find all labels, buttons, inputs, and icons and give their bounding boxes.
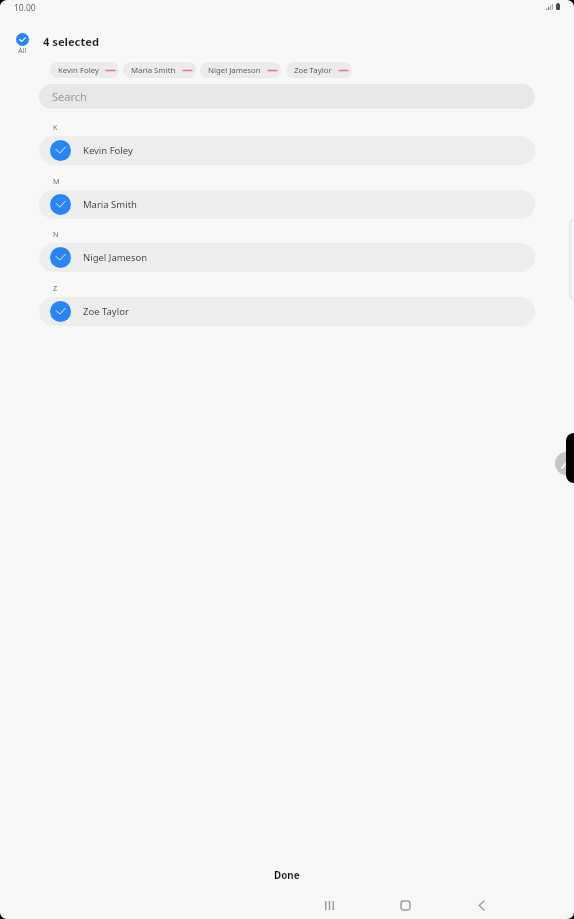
- staticText: Nigel Jameson: [208, 65, 261, 76]
- staticText: Search: [52, 89, 87, 104]
- staticText: Maria Smith: [83, 198, 137, 211]
- button[interactable]: Kevin Foley: [50, 62, 119, 78]
- staticText: 4 selected: [43, 34, 99, 49]
- button[interactable]: Nigel Jameson: [200, 62, 281, 78]
- staticText: Zoe Taylor: [83, 305, 129, 318]
- staticText: Zoe Taylor: [294, 65, 332, 76]
- button[interactable]: Recents: [305, 891, 354, 919]
- button[interactable]: Zoe Taylor: [39, 297, 535, 326]
- staticText: M: [53, 176, 60, 186]
- staticText: Z: [53, 283, 58, 293]
- button[interactable]: Maria Smith: [123, 62, 196, 78]
- staticText: All: [18, 45, 27, 55]
- button[interactable]: Back: [457, 891, 506, 919]
- button[interactable]: Search: [39, 84, 535, 109]
- button[interactable]: Nigel Jameson: [39, 243, 535, 272]
- staticText: Kevin Foley: [83, 144, 133, 157]
- staticText: Maria Smith: [131, 65, 176, 76]
- staticText: Nigel Jameson: [83, 251, 148, 264]
- staticText: 10.00: [14, 2, 36, 14]
- button[interactable]: Home: [381, 891, 430, 919]
- staticText: N: [53, 229, 59, 239]
- staticText: K: [53, 122, 58, 132]
- button[interactable]: Maria Smith: [39, 190, 535, 219]
- button[interactable]: Select all: [11, 31, 34, 55]
- button[interactable]: Done: [0, 862, 574, 888]
- button[interactable]: Zoe Taylor: [286, 62, 352, 78]
- staticText: Kevin Foley: [58, 65, 99, 76]
- staticText: Done: [274, 869, 300, 882]
- button[interactable]: Edge panel: [555, 452, 574, 475]
- button[interactable]: Kevin Foley: [39, 136, 535, 165]
